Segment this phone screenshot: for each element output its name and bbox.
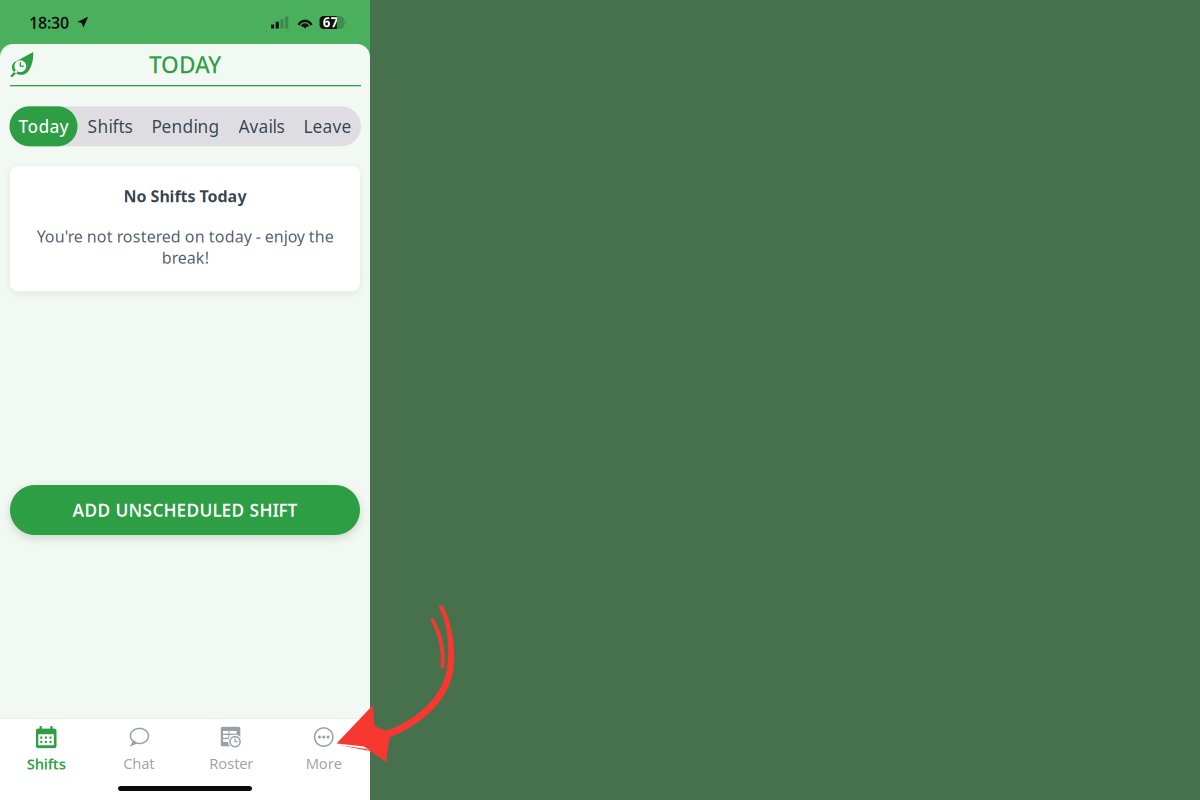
staticText: 18:30 [29, 12, 69, 33]
staticText: You're not rostered on today - enjoy the… [36, 225, 333, 268]
staticText: ADD UNSCHEDULED SHIFT [72, 498, 297, 521]
button[interactable]: Roster [185, 727, 277, 773]
button[interactable]: Deputy home [0, 44, 46, 85]
button[interactable]: Pending [142, 106, 228, 146]
staticText: No Shifts Today [123, 185, 246, 206]
staticText: 67 [323, 13, 339, 31]
button[interactable]: Shifts [0, 727, 92, 773]
button[interactable]: Avails [229, 106, 293, 146]
staticText: Roster [209, 754, 253, 773]
button[interactable]: More [277, 727, 370, 773]
button[interactable]: Leave [294, 106, 360, 146]
staticText: TODAY [149, 49, 221, 79]
button[interactable]: ADD UNSCHEDULED SHIFT [10, 485, 360, 535]
staticText: Shifts [27, 754, 66, 774]
button[interactable]: Chat [92, 727, 185, 773]
staticText: More [306, 754, 342, 773]
button[interactable]: Today [9, 106, 77, 146]
button[interactable]: Shifts [78, 106, 141, 146]
staticText: Leave [303, 115, 351, 138]
staticText: Shifts [87, 115, 132, 138]
staticText: Chat [123, 754, 154, 773]
staticText: Pending [151, 115, 219, 138]
staticText: Avails [238, 115, 284, 138]
staticText: Today [18, 115, 68, 138]
